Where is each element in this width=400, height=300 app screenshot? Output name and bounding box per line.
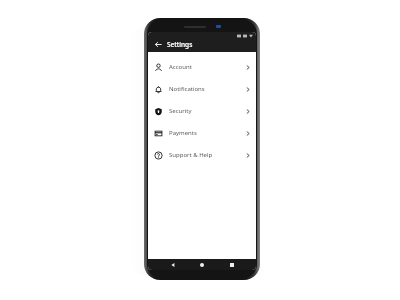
button[interactable]: Home xyxy=(197,260,207,270)
staticText: Support & Help xyxy=(169,151,246,159)
staticText: Security xyxy=(169,107,246,115)
button[interactable]: Account xyxy=(148,56,256,78)
button[interactable]: Payments xyxy=(148,122,256,144)
staticText: Payments xyxy=(169,129,246,137)
button[interactable]: Recent apps xyxy=(227,260,237,270)
staticText: Account xyxy=(169,63,246,71)
staticText: Notifications xyxy=(169,85,246,93)
button[interactable]: Security xyxy=(148,100,256,122)
staticText: Settings xyxy=(167,40,193,49)
button[interactable]: Support & Help xyxy=(148,144,256,166)
button[interactable]: Notifications xyxy=(148,78,256,100)
button[interactable]: Back xyxy=(168,260,178,270)
button[interactable]: Back xyxy=(152,38,164,50)
